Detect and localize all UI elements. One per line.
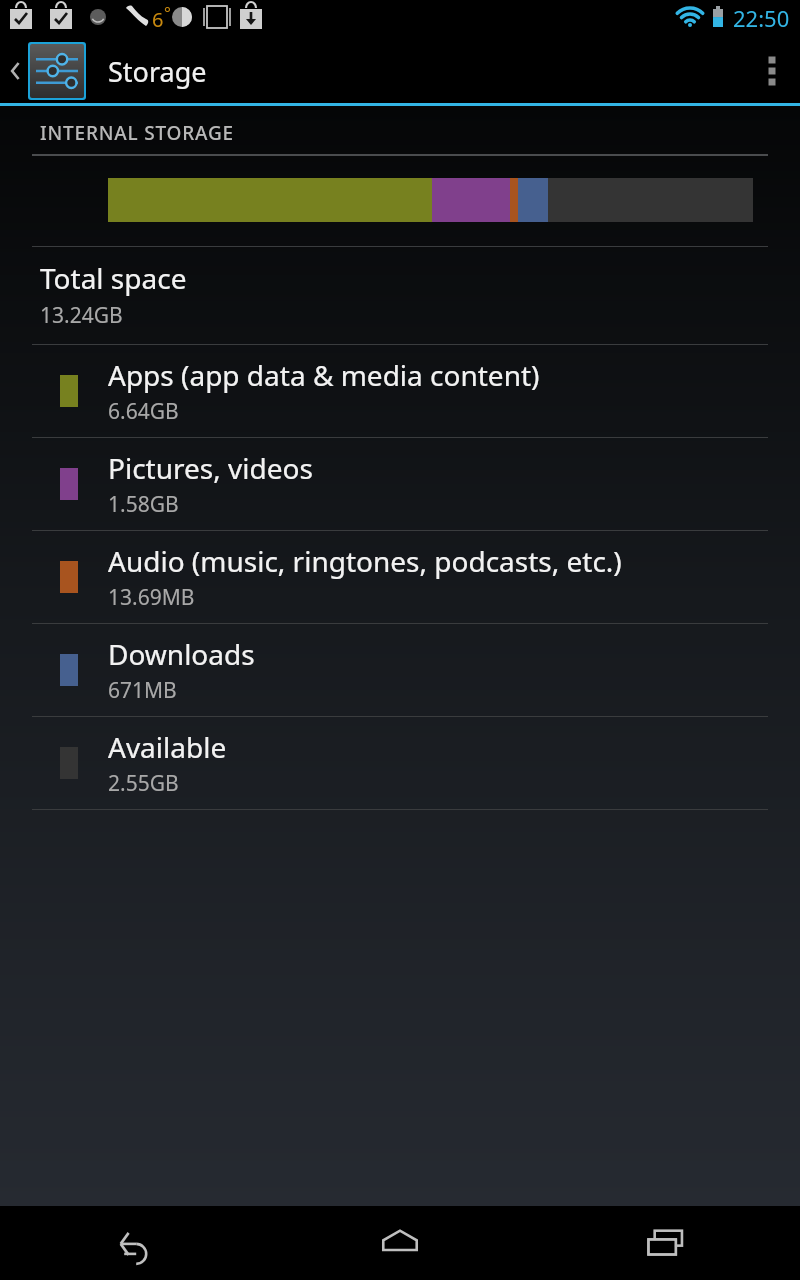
staticText: 671MB <box>108 676 177 705</box>
staticText: ° <box>164 2 171 24</box>
staticText: Total space <box>40 259 187 297</box>
button[interactable]: Total space <box>0 247 800 344</box>
button[interactable]: Apps (app data & media content) <box>0 345 800 437</box>
button[interactable]: Available <box>0 717 800 809</box>
staticText: Apps (app data & media content) <box>108 356 540 394</box>
staticText: Downloads <box>108 635 255 673</box>
staticText: Pictures, videos <box>108 449 313 487</box>
staticText: 22:50 <box>733 3 790 33</box>
button[interactable]: Downloads <box>0 624 800 716</box>
button[interactable]: Home <box>266 1206 533 1280</box>
staticText: 13.69MB <box>108 583 195 612</box>
staticText: 6 <box>152 6 164 33</box>
staticText: 2.55GB <box>108 769 179 798</box>
button[interactable]: Back <box>0 1206 266 1280</box>
button[interactable]: Audio (music, ringtones, podcasts, etc.) <box>0 531 800 623</box>
staticText: INTERNAL STORAGE <box>40 120 234 146</box>
staticText: 13.24GB <box>40 301 123 330</box>
staticText: 6.64GB <box>108 397 179 426</box>
staticText: 1.58GB <box>108 490 179 519</box>
button[interactable]: Recent apps <box>533 1206 800 1280</box>
button[interactable]: More options <box>744 36 800 106</box>
staticText: Storage <box>108 53 207 90</box>
staticText: Available <box>108 728 227 766</box>
button[interactable]: Pictures, videos <box>0 438 800 530</box>
staticText: Audio (music, ringtones, podcasts, etc.) <box>108 542 622 580</box>
button[interactable]: Storage <box>0 36 221 106</box>
